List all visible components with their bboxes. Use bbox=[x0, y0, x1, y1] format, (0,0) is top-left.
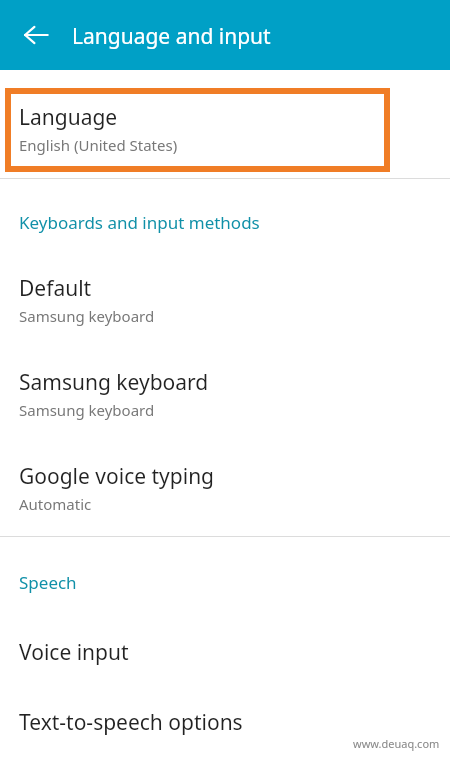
button[interactable]: Samsung keyboard bbox=[0, 360, 450, 434]
staticText: Samsung keyboard bbox=[19, 368, 209, 397]
staticText: Keyboards and input methods bbox=[19, 211, 260, 234]
button[interactable]: Back bbox=[14, 13, 58, 57]
staticText: Google voice typing bbox=[19, 462, 215, 491]
staticText: English (United States) bbox=[19, 135, 178, 155]
button[interactable]: Default bbox=[0, 266, 450, 340]
button[interactable]: Google voice typing bbox=[0, 454, 450, 528]
staticText: Text-to-speech options bbox=[19, 708, 243, 737]
staticText: www.deuaq.com bbox=[353, 736, 440, 751]
button[interactable]: Text-to-speech options bbox=[0, 700, 450, 759]
staticText: Samsung keyboard bbox=[19, 306, 155, 326]
staticText: Speech bbox=[19, 571, 77, 594]
staticText: Language bbox=[19, 103, 118, 132]
staticText: Voice input bbox=[19, 638, 129, 667]
staticText: Samsung keyboard bbox=[19, 400, 155, 420]
button[interactable]: Voice input bbox=[0, 630, 450, 690]
button[interactable]: Language bbox=[5, 88, 390, 172]
staticText: Automatic bbox=[19, 494, 92, 514]
staticText: Language and input bbox=[72, 22, 271, 51]
staticText: Default bbox=[19, 274, 92, 303]
